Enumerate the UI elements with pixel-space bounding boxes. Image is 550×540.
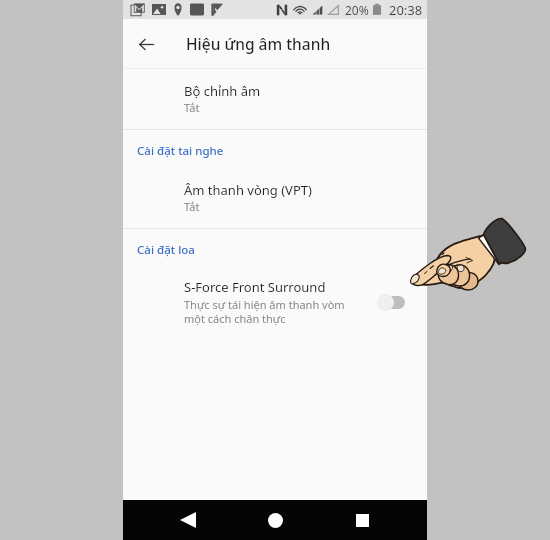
staticText: Bộ chỉnh âm — [184, 82, 261, 100]
button[interactable]: S-Force Front Surround — [123, 258, 427, 340]
staticText: Cài đặt tai nghe — [137, 143, 224, 159]
staticText: Tắt — [184, 100, 200, 115]
button[interactable]: Âm thanh vòng (VPT) — [123, 159, 427, 228]
button[interactable]: Back — [166, 500, 210, 540]
staticText: 20% — [345, 2, 369, 18]
button[interactable]: S-Force Front Surround switch — [377, 291, 407, 313]
staticText: 20:38 — [389, 1, 423, 19]
staticText: Hiệu ứng âm thanh — [186, 33, 331, 54]
staticText: Thực sự tái hiện âm thanh vòm một cách c… — [184, 297, 345, 326]
button[interactable]: Home — [253, 500, 297, 540]
button[interactable]: Bộ chỉnh âm — [123, 69, 427, 129]
button[interactable]: Back — [130, 28, 162, 60]
staticText: Âm thanh vòng (VPT) — [184, 181, 312, 199]
button[interactable]: Recent apps — [340, 500, 384, 540]
staticText: S-Force Front Surround — [184, 278, 326, 296]
staticText: Cài đặt loa — [137, 242, 195, 258]
staticText: Tắt — [184, 199, 200, 214]
